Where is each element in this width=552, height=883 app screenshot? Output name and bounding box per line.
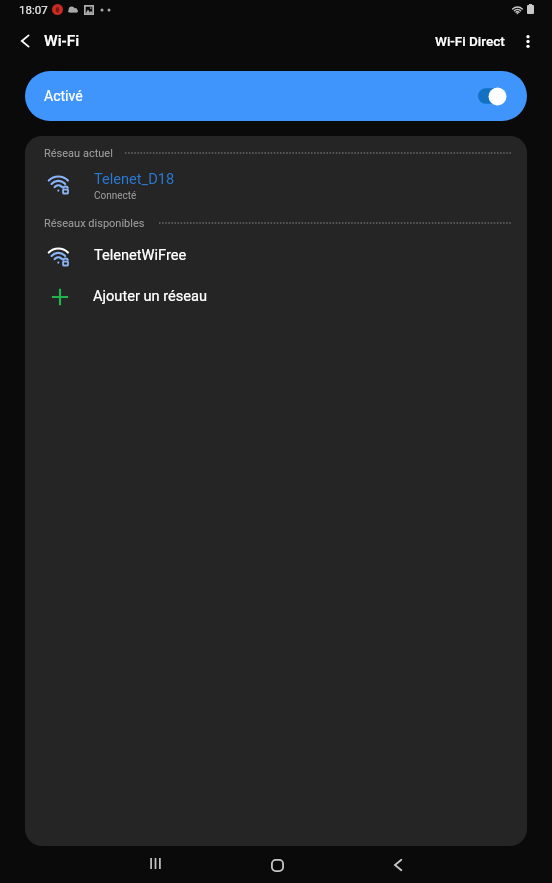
button[interactable]: Telenet_D18 xyxy=(25,166,527,205)
staticText: Réseaux disponibles xyxy=(44,217,145,230)
button[interactable]: More options xyxy=(511,25,544,58)
button[interactable]: Wi-Fi Direct xyxy=(428,24,512,58)
staticText: TelenetWiFree xyxy=(94,246,187,263)
staticText: Telenet_D18 xyxy=(94,170,175,187)
staticText: Wi-Fi xyxy=(44,32,80,50)
staticText: Wi-Fi Direct xyxy=(435,33,505,49)
button[interactable]: Back xyxy=(366,833,430,883)
button[interactable]: Ajouter un réseau xyxy=(25,278,527,314)
button[interactable]: Recent apps xyxy=(123,831,187,883)
button[interactable]: Navigate up xyxy=(5,21,45,61)
button[interactable]: Home xyxy=(245,833,309,883)
staticText: Activé xyxy=(44,88,83,104)
button[interactable]: TelenetWiFree xyxy=(25,237,527,273)
staticText: 18:07 xyxy=(19,3,48,16)
button[interactable]: Activé xyxy=(25,71,527,121)
staticText: Ajouter un réseau xyxy=(93,287,207,304)
staticText: Connecté xyxy=(94,190,137,202)
staticText: Réseau actuel xyxy=(44,147,113,160)
